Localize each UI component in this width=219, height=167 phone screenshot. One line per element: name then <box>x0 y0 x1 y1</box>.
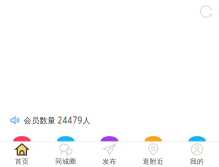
staticText: 首页 <box>15 157 29 166</box>
staticText: 会员数量 24479人 <box>23 115 90 126</box>
staticText: 发布 <box>102 157 116 166</box>
button[interactable]: 逛附近 <box>131 136 175 167</box>
staticText: 同城圈 <box>55 157 76 166</box>
button[interactable]: 首页 <box>0 136 44 167</box>
staticText: 逛附近 <box>143 157 164 166</box>
button[interactable]: 同城圈 <box>44 136 88 167</box>
button[interactable]: Refresh <box>199 5 213 19</box>
button[interactable]: 发布 <box>88 136 131 167</box>
button[interactable]: 我的 <box>175 136 219 167</box>
staticText: 我的 <box>190 157 204 166</box>
